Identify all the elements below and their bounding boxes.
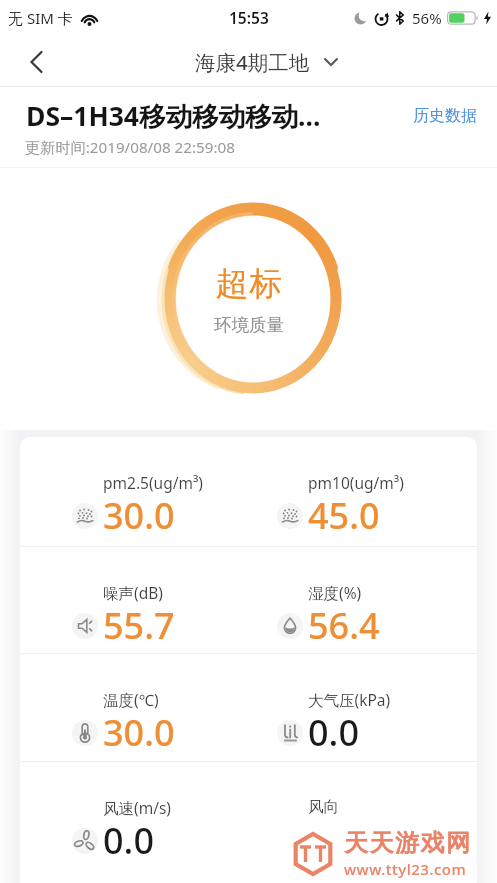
staticText: 超标	[215, 263, 283, 305]
staticText: 风速(m/s)	[103, 797, 171, 818]
staticText: 56.4	[308, 601, 380, 650]
staticText: 15:53	[229, 7, 269, 28]
button[interactable]: pm10(ug/m³)	[225, 437, 477, 546]
button[interactable]	[30, 44, 66, 80]
staticText: pm10(ug/m³)	[308, 472, 404, 493]
button[interactable]: 噪声(dB)	[20, 547, 225, 653]
staticText: 历史数据	[413, 106, 477, 126]
staticText: 0.0	[103, 816, 154, 865]
staticText: 55.7	[103, 601, 175, 650]
staticText: pm2.5(ug/m³)	[103, 472, 204, 493]
staticText: www.ttyl23.com	[344, 859, 467, 879]
button[interactable]: 历史数据	[413, 106, 497, 126]
staticText: 45.0	[308, 491, 380, 540]
staticText: 环境质量	[214, 314, 284, 336]
staticText: 海康4期工地	[195, 48, 310, 76]
staticText: 更新时间:2019/08/08 22:59:08	[25, 137, 235, 158]
staticText: 风向	[308, 797, 339, 817]
staticText: 30.0	[103, 491, 175, 540]
button[interactable]: 海康4期工地	[195, 48, 338, 76]
staticText: 噪声(dB)	[103, 582, 163, 603]
staticText: 30.0	[103, 708, 175, 757]
button[interactable]: 风向	[225, 762, 477, 883]
button[interactable]: pm2.5(ug/m³)	[20, 437, 225, 546]
staticText: 0.0	[308, 708, 359, 757]
staticText: DS–1H34移动移动移动...	[26, 98, 321, 134]
button[interactable]: 风速(m/s)	[20, 762, 225, 883]
button[interactable]: 湿度(%)	[225, 547, 477, 653]
staticText: 无 SIM 卡	[8, 8, 73, 28]
staticText: 天天游戏网	[344, 828, 472, 858]
staticText: 温度(℃)	[103, 689, 159, 710]
staticText: 56%	[412, 8, 442, 28]
button[interactable]: 温度(℃)	[20, 654, 225, 761]
staticText: 湿度(%)	[308, 582, 362, 603]
button[interactable]: 大气压(kPa)	[225, 654, 477, 761]
staticText: 大气压(kPa)	[308, 689, 391, 710]
